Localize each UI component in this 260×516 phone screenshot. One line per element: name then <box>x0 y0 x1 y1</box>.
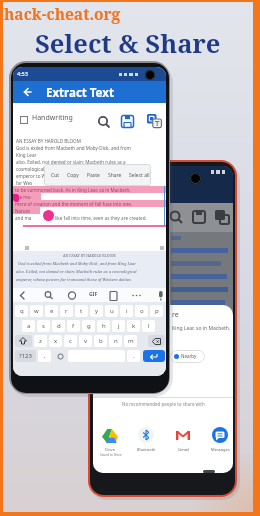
staticText: and ma <box>15 215 32 221</box>
button[interactable]: x <box>49 335 62 347</box>
staticText: 4:53 <box>17 70 28 77</box>
button[interactable]: , <box>38 350 51 362</box>
button[interactable]: re <box>93 305 233 473</box>
button[interactable]: s <box>37 320 50 332</box>
button[interactable]: c <box>64 335 77 347</box>
button[interactable]: ?123 <box>15 350 36 362</box>
button[interactable]: d <box>52 320 65 332</box>
staticText: n <box>114 337 118 345</box>
staticText: w <box>34 307 39 315</box>
staticText: Extract Text <box>46 85 114 101</box>
staticText: c <box>69 337 72 345</box>
button[interactable]: h <box>97 320 110 332</box>
staticText: l <box>148 322 150 330</box>
button[interactable]: . <box>127 350 140 362</box>
staticText: far Wes <box>16 180 33 186</box>
button[interactable]: f <box>67 320 80 332</box>
button[interactable]: k <box>127 320 140 332</box>
button[interactable] <box>53 350 66 362</box>
staticText: emperor, whose powers far transcend thos… <box>16 277 131 282</box>
button[interactable]: g <box>82 320 95 332</box>
button[interactable]: m <box>124 335 137 347</box>
staticText: e <box>50 307 54 315</box>
button[interactable]: r <box>60 305 73 317</box>
button[interactable] <box>148 335 165 347</box>
staticText: God is exiled from Macbeth and Moby-Dick… <box>16 145 131 151</box>
staticText: Cut <box>51 172 60 179</box>
staticText: to be summoned back. As in King Lear, so… <box>15 187 131 193</box>
button[interactable] <box>13 81 166 103</box>
staticText: q <box>20 307 24 315</box>
staticText: Drive <box>105 447 115 452</box>
staticText: cosmological emperor, and his nature tur… <box>16 166 127 172</box>
button[interactable]: l <box>142 320 155 332</box>
staticText: Handwriting <box>32 113 73 123</box>
staticText: Nature <box>15 208 30 214</box>
staticText: h <box>102 322 106 330</box>
button[interactable]: Messages <box>209 427 231 453</box>
staticText: p <box>155 307 159 315</box>
button[interactable]: n <box>109 335 122 347</box>
staticText: also. Exiled, not denied or slain; Macbe… <box>16 269 137 274</box>
button[interactable]: w <box>30 305 43 317</box>
button[interactable]: j <box>112 320 125 332</box>
staticText: AN ESSAY BY HAROLD BLOOM <box>63 253 116 258</box>
button[interactable]: i <box>120 305 133 317</box>
button[interactable]: a <box>22 320 35 332</box>
staticText: a <box>27 322 31 330</box>
staticText: f <box>72 322 75 330</box>
staticText: t <box>80 307 83 315</box>
button[interactable]: u <box>105 305 118 317</box>
button[interactable]: y <box>90 305 103 317</box>
staticText: m <box>128 337 134 345</box>
button[interactable]: z <box>34 335 47 347</box>
staticText: k <box>132 322 136 330</box>
staticText: emperor to Western selves, and his far <box>16 173 100 179</box>
staticText: the mo- <box>15 194 32 200</box>
button[interactable]: o <box>135 305 148 317</box>
staticText: King Lear <box>16 152 37 158</box>
staticText: Paste <box>87 172 100 179</box>
staticText: re <box>172 310 179 320</box>
button[interactable]: e <box>45 305 58 317</box>
staticText: Select all <box>129 172 150 179</box>
button[interactable]: Gmail <box>172 427 194 453</box>
staticText: AN ESSAY BY HAROLD BLOOM <box>16 138 81 144</box>
staticText: like fall into time, even as they are cr… <box>55 215 147 221</box>
staticText: j <box>118 322 120 330</box>
button[interactable]: v <box>79 335 92 347</box>
staticText: v <box>84 337 88 345</box>
staticText: Saved to Drive <box>100 453 122 457</box>
staticText: No recommended people to share with <box>122 401 205 407</box>
staticText: Select & Share <box>35 26 221 60</box>
staticText: God is exiled from Macbeth and Moby-Dick… <box>18 261 137 266</box>
staticText: also. Exiled, not denied or slain: Macbe… <box>16 159 126 165</box>
staticText: i <box>126 307 128 315</box>
button[interactable]: q <box>15 305 28 317</box>
staticText: , <box>44 352 46 360</box>
staticText: Gmail <box>178 447 189 452</box>
staticText: King Lear, so in Macbeth. <box>172 325 231 332</box>
button[interactable] <box>143 350 165 362</box>
staticText: Bluetooth <box>137 447 156 452</box>
button[interactable]: Nearby <box>170 350 205 363</box>
staticText: Share <box>108 172 122 179</box>
staticText: d <box>57 322 61 330</box>
staticText: x <box>54 337 58 345</box>
staticText: g <box>87 322 91 330</box>
button[interactable]: Drive <box>99 427 121 453</box>
staticText: r <box>65 307 68 315</box>
button[interactable]: t <box>75 305 88 317</box>
staticText: Messages <box>211 447 230 452</box>
staticText: u <box>110 307 114 315</box>
staticText: o <box>140 307 144 315</box>
button[interactable]: p <box>150 305 163 317</box>
staticText: . <box>133 352 135 360</box>
button[interactable]: Bluetooth <box>135 427 157 453</box>
button[interactable] <box>20 116 28 124</box>
staticText: Copy <box>67 172 79 179</box>
button[interactable]: b <box>94 335 107 347</box>
button[interactable] <box>15 335 32 347</box>
staticText: z <box>39 337 42 345</box>
